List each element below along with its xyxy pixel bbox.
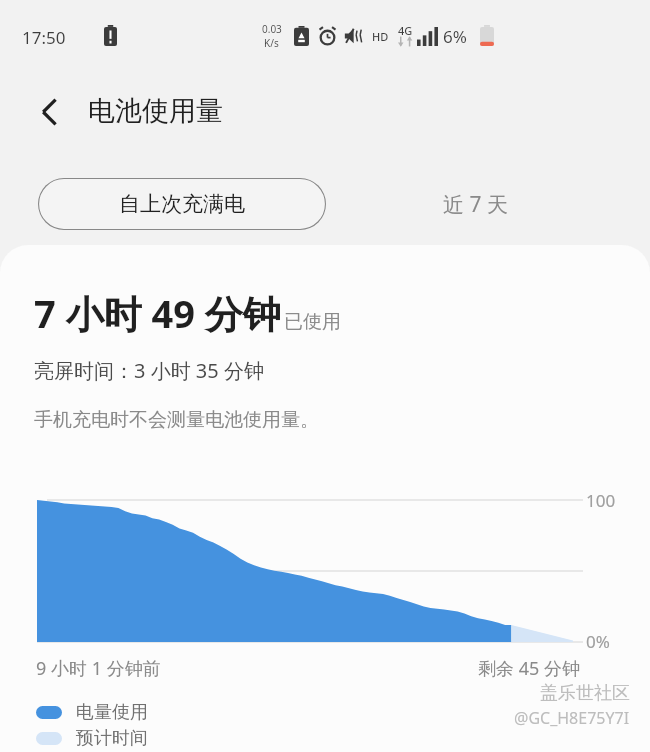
staticText: 电池使用量 xyxy=(88,94,223,128)
staticText: @GC_H8E75Y7I xyxy=(514,707,630,729)
button[interactable]: 近 7 天 xyxy=(400,178,550,230)
staticText: 剩余 45 分钟 xyxy=(478,656,580,681)
button[interactable]: Back xyxy=(26,88,74,136)
staticText: 0% xyxy=(586,630,610,653)
button[interactable]: 预计时间 xyxy=(36,726,148,750)
staticText: 9 小时 1 分钟前 xyxy=(36,656,161,681)
staticText: 4G xyxy=(398,23,413,38)
staticText: 亮屏时间：3 小时 35 分钟 xyxy=(34,357,264,384)
staticText: 预计时间 xyxy=(76,727,148,750)
staticText: 17:50 xyxy=(22,26,66,49)
staticText: 手机充电时不会测量电池使用量。 xyxy=(34,408,319,432)
staticText: 0.03 xyxy=(262,22,282,36)
staticText: 自上次充满电 xyxy=(119,191,245,217)
button[interactable]: 电量使用 xyxy=(36,700,148,724)
staticText: 电量使用 xyxy=(76,701,148,724)
staticText: 近 7 天 xyxy=(443,190,508,219)
staticText: 6% xyxy=(443,25,467,48)
staticText: 7 小时 49 分钟 xyxy=(34,287,281,339)
staticText: 已使用 xyxy=(284,310,341,334)
staticText: 100 xyxy=(586,489,616,512)
staticText: K/s xyxy=(264,36,279,50)
staticText: HD xyxy=(372,29,389,44)
button[interactable]: 自上次充满电 xyxy=(38,178,326,230)
staticText: 盖乐世社区 xyxy=(540,682,630,705)
